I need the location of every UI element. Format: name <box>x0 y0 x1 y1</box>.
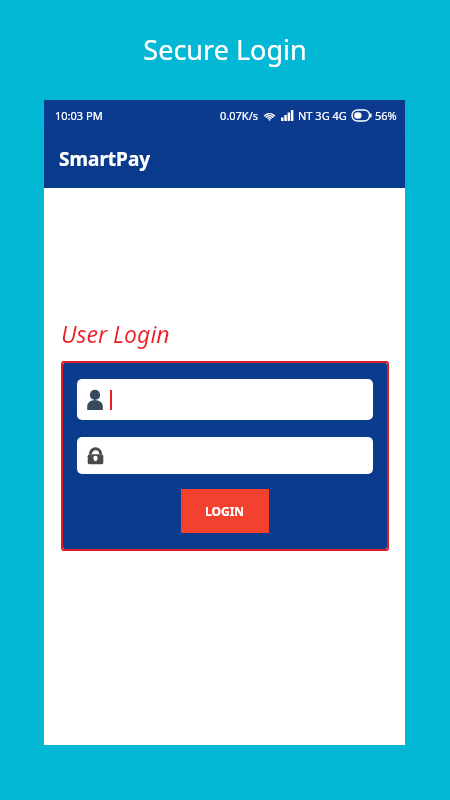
button[interactable]: Password <box>77 437 373 474</box>
staticText: 10:03 PM <box>55 108 103 123</box>
button[interactable]: Username <box>77 379 373 420</box>
staticText: LOGIN <box>205 503 245 519</box>
staticText: 56% <box>375 108 397 123</box>
other: Password <box>86 445 105 467</box>
staticText: 0.07K/s <box>220 108 258 123</box>
button[interactable]: LOGIN <box>181 489 269 533</box>
staticText: Secure Login <box>0 31 450 68</box>
staticText: NT 3G 4G <box>298 108 347 123</box>
staticText: SmartPay <box>59 146 151 172</box>
staticText: User Login <box>61 318 170 349</box>
other: Username <box>85 389 105 411</box>
